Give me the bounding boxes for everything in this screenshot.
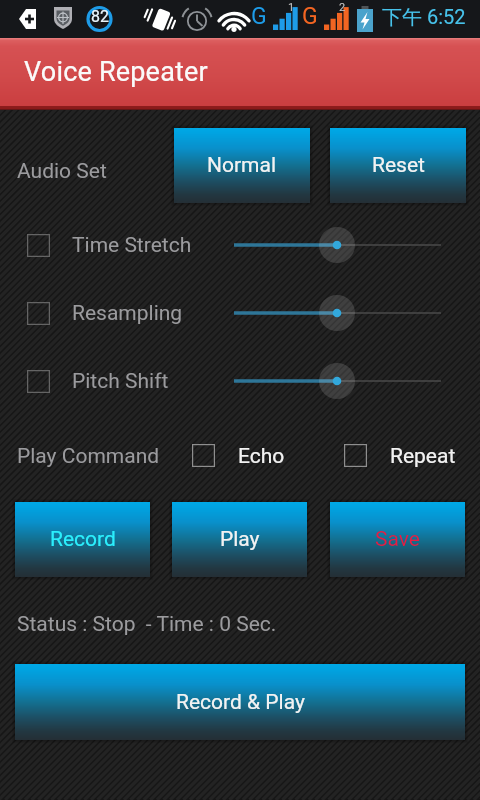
button[interactable]: Repeat: [344, 444, 367, 467]
button[interactable]: Normal: [174, 128, 310, 203]
button[interactable]: Time Stretch: [27, 234, 50, 257]
button[interactable]: Pitch Shift slider: [216, 357, 459, 405]
staticText: 2: [339, 1, 346, 14]
button[interactable]: Time Stretch slider: [216, 221, 459, 269]
staticText: 下午 6:52: [382, 5, 466, 30]
button[interactable]: Reset: [330, 128, 466, 203]
staticText: Save: [375, 527, 420, 552]
staticText: 82: [91, 7, 109, 26]
staticText: Echo: [238, 444, 285, 469]
button[interactable]: Record & Play: [15, 664, 465, 740]
staticText: Play Command: [17, 444, 160, 469]
staticText: Record & Play: [176, 690, 305, 715]
staticText: Time Stretch: [72, 233, 192, 258]
button[interactable]: Resampling slider: [216, 289, 459, 337]
staticText: Voice Repeater: [24, 56, 208, 88]
button[interactable]: Pitch Shift: [27, 370, 50, 393]
staticText: Reset: [372, 153, 425, 178]
staticText: Audio Set: [17, 159, 107, 184]
staticText: G: [302, 3, 318, 30]
staticText: G: [251, 3, 267, 30]
button[interactable]: Save: [330, 502, 465, 577]
staticText: Pitch Shift: [72, 369, 169, 394]
staticText: Play: [220, 527, 260, 552]
staticText: Normal: [207, 153, 277, 178]
staticText: Record: [50, 527, 116, 552]
staticText: Status : Stop - Time : 0 Sec.: [17, 612, 277, 637]
button[interactable]: Play: [172, 502, 307, 577]
staticText: 1: [288, 1, 295, 14]
staticText: Repeat: [390, 444, 456, 469]
button[interactable]: Echo: [192, 444, 215, 467]
button[interactable]: Resampling: [27, 302, 50, 325]
button[interactable]: Record: [15, 502, 150, 577]
staticText: Resampling: [72, 301, 183, 326]
